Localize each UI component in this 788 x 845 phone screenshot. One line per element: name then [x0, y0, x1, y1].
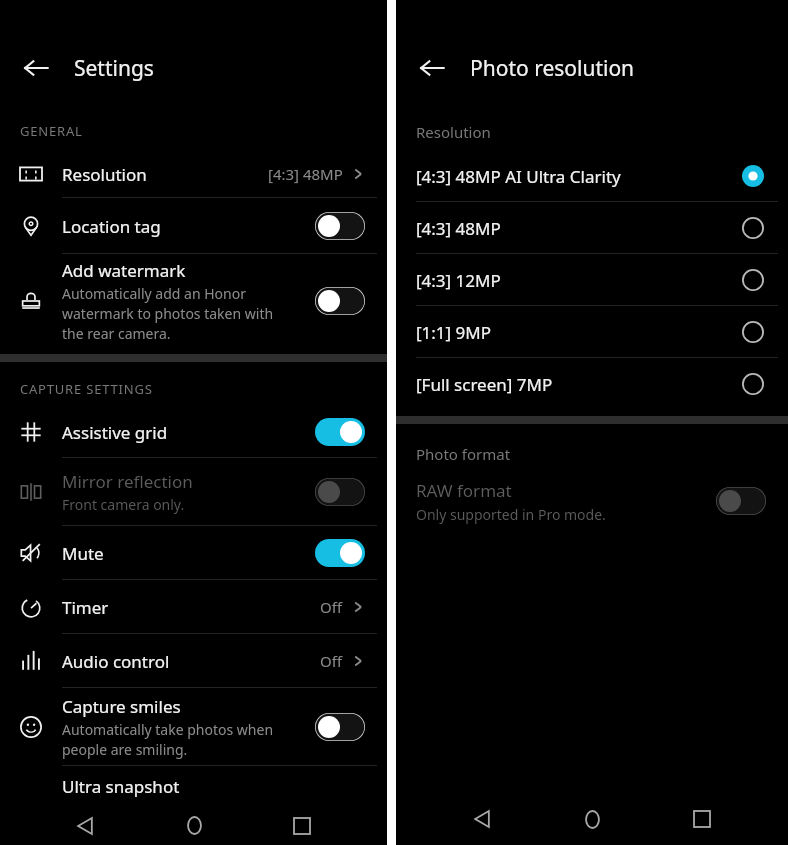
button[interactable]: Back — [61, 806, 109, 845]
staticText: Mirror reflection — [62, 470, 193, 493]
button[interactable]: RAW format — [396, 468, 788, 534]
button[interactable]: Timer — [0, 580, 387, 634]
button[interactable]: Mirror reflection — [0, 458, 387, 526]
button[interactable]: Back — [14, 46, 58, 90]
staticText: Off — [320, 597, 343, 617]
button[interactable]: [Full screen] 7MP — [396, 358, 788, 410]
staticText: Automatically take photos when people ar… — [62, 720, 274, 759]
staticText: Resolution — [62, 163, 147, 186]
staticText: [4:3] 12MP — [416, 269, 742, 292]
staticText: Automatically add an Honor watermark to … — [62, 284, 274, 343]
button[interactable]: [4:3] 48MP AI Ultra Clarity — [396, 150, 788, 202]
staticText: Photo resolution — [470, 54, 635, 83]
button[interactable]: Ultra snapshot — [0, 766, 387, 806]
staticText: GENERAL — [20, 122, 83, 140]
staticText: Off — [320, 651, 343, 671]
button[interactable]: Add watermark — [0, 254, 387, 348]
staticText: [4:3] 48MP — [268, 164, 343, 184]
button[interactable]: Home — [170, 806, 218, 845]
button[interactable]: Off — [315, 212, 365, 240]
staticText: Location tag — [62, 215, 161, 238]
staticText: Timer — [62, 596, 109, 619]
staticText: [4:3] 48MP — [416, 217, 742, 240]
staticText: Mute — [62, 542, 104, 565]
button[interactable]: Resolution — [0, 150, 387, 198]
staticText: RAW format — [416, 479, 512, 502]
button[interactable]: Back — [410, 46, 454, 90]
button[interactable]: Off — [315, 713, 365, 741]
button[interactable]: Off — [315, 478, 365, 506]
button[interactable]: Mute — [0, 526, 387, 580]
staticText: Assistive grid — [62, 421, 168, 444]
button[interactable]: On — [315, 539, 365, 567]
button[interactable]: [4:3] 48MP — [396, 202, 788, 254]
button[interactable]: Location tag — [0, 198, 387, 254]
staticText: Audio control — [62, 650, 170, 673]
button[interactable]: Home — [568, 795, 616, 843]
staticText: Settings — [74, 54, 154, 83]
button[interactable]: On — [315, 418, 365, 446]
staticText: Capture smiles — [62, 695, 181, 718]
staticText: [1:1] 9MP — [416, 321, 742, 344]
button[interactable]: Recents — [678, 795, 726, 843]
staticText: Ultra snapshot — [62, 775, 180, 798]
button[interactable]: Audio control — [0, 634, 387, 688]
staticText: Only supported in Pro mode. — [416, 505, 606, 524]
staticText: Photo format — [416, 444, 511, 464]
staticText: [Full screen] 7MP — [416, 373, 742, 396]
button[interactable]: Off — [315, 287, 365, 315]
button[interactable]: [1:1] 9MP — [396, 306, 788, 358]
staticText: CAPTURE SETTINGS — [20, 380, 153, 398]
staticText: Front camera only. — [62, 495, 185, 514]
button[interactable]: Assistive grid — [0, 406, 387, 458]
button[interactable]: [4:3] 12MP — [396, 254, 788, 306]
button[interactable]: Recents — [278, 806, 326, 845]
button[interactable]: Back — [458, 795, 506, 843]
staticText: Resolution — [416, 122, 491, 142]
staticText: Add watermark — [62, 259, 186, 282]
staticText: [4:3] 48MP AI Ultra Clarity — [416, 165, 742, 188]
button[interactable]: Off — [716, 487, 766, 515]
button[interactable]: Capture smiles — [0, 688, 387, 766]
